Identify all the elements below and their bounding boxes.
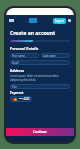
- button[interactable]: City: [10, 84, 70, 89]
- button[interactable]: Email: [10, 60, 70, 65]
- button[interactable]: Last name: [41, 53, 70, 58]
- button[interactable]: •••• 4242: [10, 96, 32, 102]
- staticText: Log in: [55, 19, 64, 23]
- staticText: City: [12, 85, 17, 89]
- staticText: First name: [12, 54, 25, 58]
- button[interactable]: First name: [10, 53, 39, 58]
- staticText: Personal Details: [10, 46, 39, 51]
- staticText: Email: [12, 61, 19, 65]
- button[interactable]: Continue: [6, 128, 74, 136]
- staticText: Address: [10, 68, 24, 73]
- staticText: •••• 4242: [19, 97, 30, 101]
- button[interactable]: Menu: [68, 19, 71, 22]
- staticText: Create an account: [10, 30, 56, 37]
- staticText: Lorem ipsum dolor sit amet consectetur a…: [10, 74, 70, 82]
- staticText: Last name: [43, 54, 56, 58]
- staticText: Continue: [33, 130, 47, 134]
- button[interactable]: Log in: [53, 18, 66, 24]
- staticText: Payment: [10, 91, 24, 95]
